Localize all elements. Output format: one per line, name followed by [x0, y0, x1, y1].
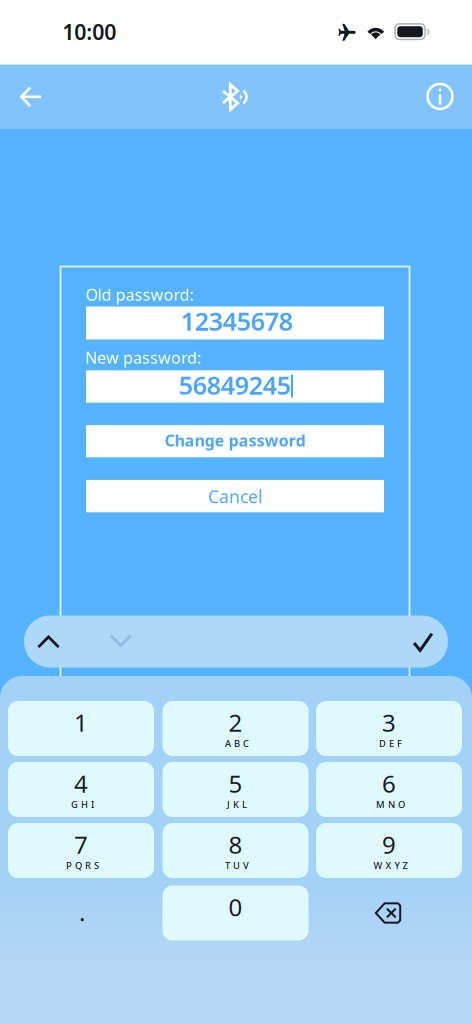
staticText: 6 — [382, 768, 396, 799]
staticText: JKL — [227, 798, 247, 811]
staticText: 56849245 — [178, 368, 290, 402]
button[interactable]: Previous field — [18, 616, 78, 668]
staticText: MNO — [376, 798, 405, 811]
button[interactable]: 8 — [162, 823, 308, 878]
staticText: . — [79, 896, 85, 928]
button[interactable]: 9 — [316, 823, 462, 878]
staticText: Change password — [164, 430, 305, 451]
staticText: 10:00 — [62, 18, 116, 46]
staticText: 0 — [228, 891, 242, 923]
staticText: 2 — [228, 707, 242, 738]
button[interactable]: 1 — [8, 701, 154, 756]
staticText: PQRS — [66, 859, 99, 872]
staticText: 12345678 — [180, 304, 292, 338]
button[interactable]: 2 — [162, 701, 308, 756]
staticText: Old password: — [85, 284, 193, 305]
staticText: 1 — [74, 707, 88, 738]
button[interactable]: 6 — [316, 762, 462, 817]
staticText: 3 — [382, 707, 396, 738]
button[interactable]: Back — [8, 74, 54, 120]
button[interactable]: Cancel — [86, 480, 384, 512]
button[interactable]: Next field — [91, 614, 151, 666]
button[interactable]: . — [8, 885, 154, 940]
staticText: GHI — [71, 798, 94, 811]
staticText: 9 — [382, 829, 396, 860]
button[interactable]: Delete — [315, 885, 461, 940]
button[interactable]: 4 — [8, 762, 154, 817]
button[interactable]: 3 — [316, 701, 462, 756]
staticText: 4 — [74, 768, 88, 799]
button[interactable]: Done — [395, 616, 451, 668]
staticText: WXYZ — [373, 859, 407, 872]
button[interactable]: Information — [417, 73, 463, 119]
staticText: New password: — [85, 347, 201, 368]
staticText: Cancel — [208, 485, 262, 508]
staticText: DEF — [379, 737, 402, 750]
staticText: 7 — [74, 829, 88, 860]
button[interactable]: 5 — [162, 762, 308, 817]
staticText: TUV — [225, 859, 249, 872]
button[interactable]: Change password — [86, 425, 384, 457]
button[interactable]: 7 — [8, 823, 154, 878]
staticText: ABC — [225, 737, 249, 750]
button[interactable]: 0 — [162, 885, 308, 940]
staticText: 8 — [228, 829, 242, 860]
staticText: 5 — [228, 768, 242, 799]
